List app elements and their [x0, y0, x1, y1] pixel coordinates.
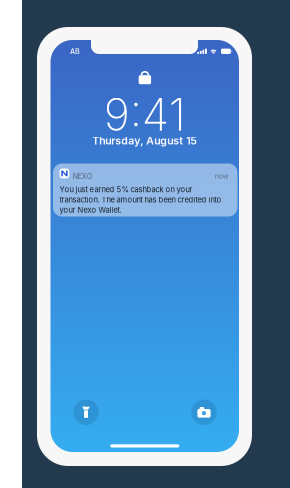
button[interactable]: Flashlight: [73, 399, 99, 425]
button[interactable]: NEXO: [53, 163, 237, 216]
staticText: AB: [70, 47, 80, 56]
staticText: Thursday, August 15: [92, 134, 197, 147]
button[interactable]: Camera: [191, 399, 217, 425]
staticText: NEXO: [73, 172, 93, 181]
staticText: now: [215, 171, 229, 180]
staticText: You just earned 5% cashback on your tran…: [59, 185, 221, 215]
staticText: 9:41: [104, 87, 186, 141]
